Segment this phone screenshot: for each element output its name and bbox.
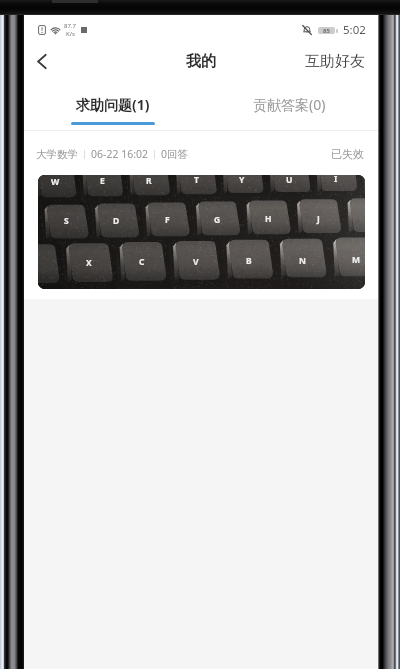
staticText: H	[265, 213, 272, 225]
staticText: C	[139, 256, 145, 268]
staticText: 我的	[186, 52, 216, 71]
button[interactable]: 互助好友	[292, 44, 378, 78]
button[interactable]: Question photo	[38, 175, 365, 289]
staticText: V	[193, 256, 199, 268]
staticText: 已失效	[331, 147, 364, 161]
staticText: 0回答	[161, 147, 189, 161]
staticText: K/s	[66, 30, 75, 38]
staticText: 贡献答案(0)	[253, 95, 326, 114]
staticText: U	[286, 175, 293, 186]
button[interactable]: Back	[24, 44, 60, 78]
staticText: 互助好友	[305, 52, 365, 71]
button[interactable]: 求助问题(1)	[24, 85, 201, 130]
staticText: 5:02	[343, 22, 366, 38]
staticText: S	[64, 215, 69, 227]
staticText: D	[113, 215, 120, 227]
staticText: 大学数学	[36, 148, 78, 161]
staticText: 87.7	[64, 22, 76, 30]
staticText: G	[214, 214, 221, 226]
staticText: E	[100, 175, 105, 187]
staticText: W	[51, 176, 60, 188]
staticText: T	[194, 175, 199, 186]
staticText: 求助问题(1)	[76, 95, 150, 114]
staticText: 85	[323, 27, 330, 34]
staticText: F	[165, 214, 170, 226]
button[interactable]: 贡献答案(0)	[201, 85, 378, 130]
staticText: R	[146, 175, 152, 187]
staticText: M	[352, 254, 361, 266]
staticText: J	[317, 213, 320, 225]
staticText: B	[246, 255, 252, 267]
staticText: I	[334, 175, 338, 185]
staticText: X	[86, 257, 92, 269]
staticText: N	[299, 255, 306, 267]
staticText: 06-22 16:02	[91, 147, 148, 161]
staticText: Y	[239, 175, 245, 186]
